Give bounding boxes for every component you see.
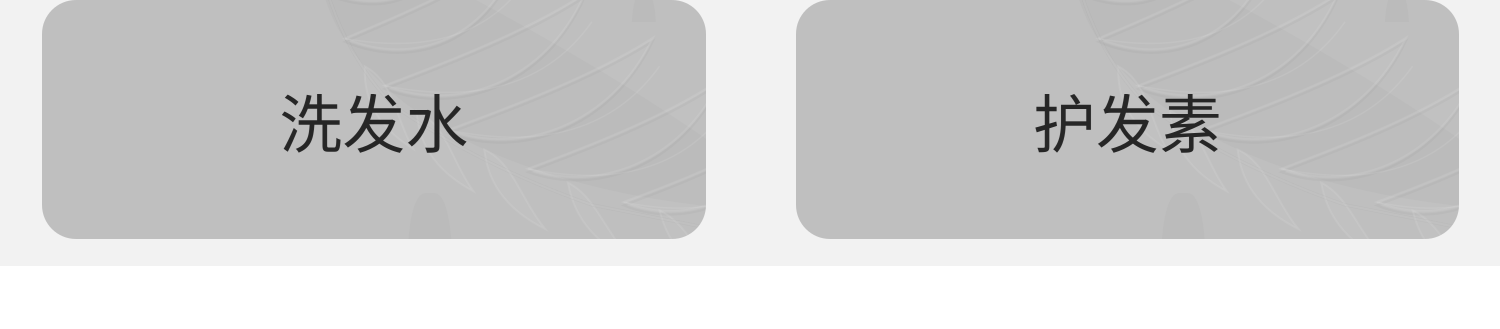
button[interactable]: 护发素 xyxy=(796,0,1459,239)
button[interactable]: 洗发水 xyxy=(42,0,706,239)
staticText: 洗发水 xyxy=(279,74,468,165)
staticText: 护发素 xyxy=(1033,74,1222,165)
